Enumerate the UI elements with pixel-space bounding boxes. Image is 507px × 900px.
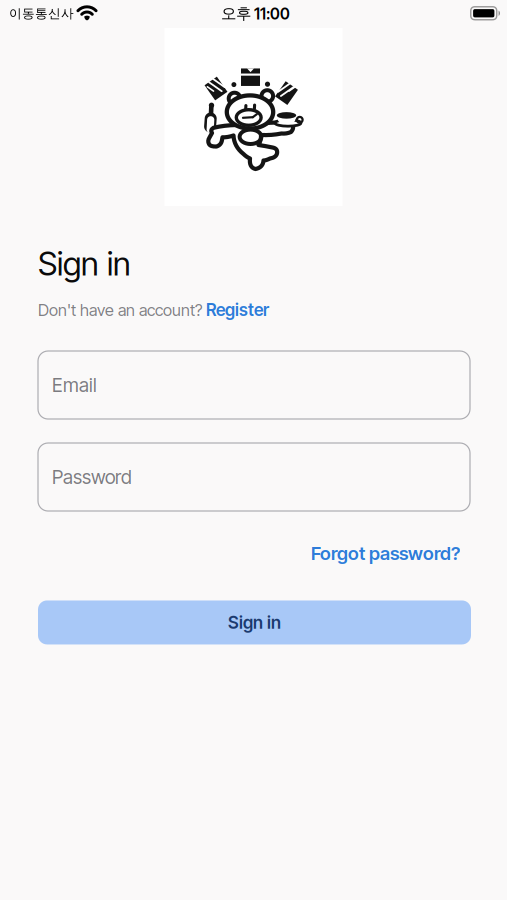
staticText: Don't have an account? bbox=[38, 300, 202, 320]
staticText: 오후 11:00 bbox=[221, 4, 290, 23]
staticText: 이동통신사 bbox=[9, 5, 74, 21]
button[interactable]: Register bbox=[206, 299, 269, 320]
staticText: Sign in bbox=[38, 244, 131, 283]
staticText: Password bbox=[52, 465, 132, 489]
button[interactable]: Email bbox=[38, 351, 470, 419]
button[interactable]: Password bbox=[38, 443, 470, 511]
staticText: Register bbox=[206, 299, 269, 320]
button[interactable]: Forgot password? bbox=[311, 542, 460, 564]
button[interactable]: Sign in bbox=[38, 600, 471, 644]
staticText: Forgot password? bbox=[311, 542, 460, 564]
staticText: Email bbox=[52, 373, 97, 397]
staticText: Sign in bbox=[228, 612, 281, 633]
